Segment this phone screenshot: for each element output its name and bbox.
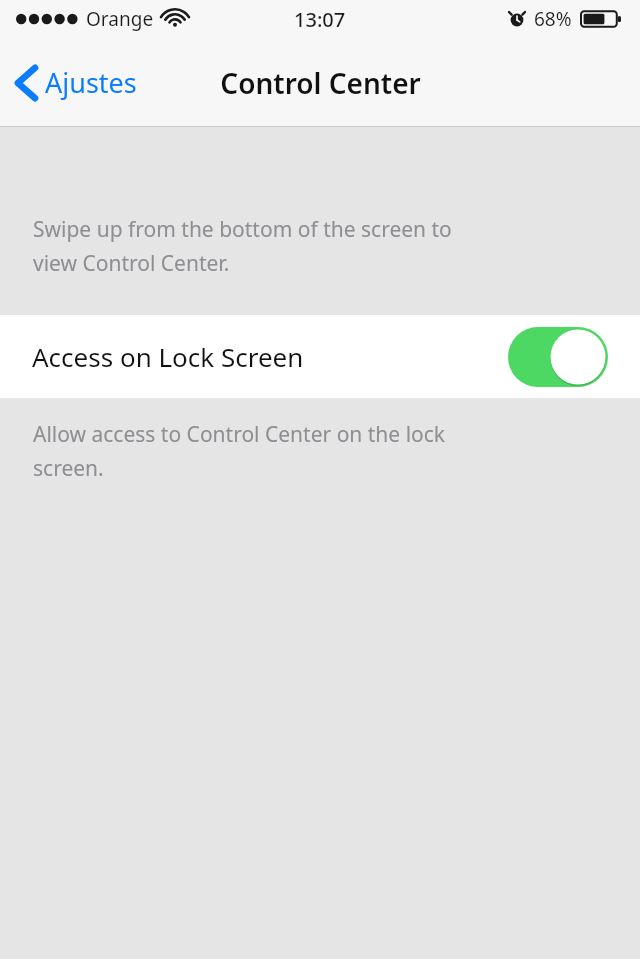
staticText: Swipe up from the bottom of the screen t… [33, 215, 452, 277]
button[interactable]: Access on Lock Screen toggle, on [508, 327, 608, 387]
staticText: 68% [534, 6, 572, 32]
button[interactable]: Ajustes [0, 38, 151, 127]
staticText: Access on Lock Screen [32, 339, 304, 374]
staticText: Orange [86, 6, 154, 32]
staticText: 13:07 [294, 6, 346, 33]
staticText: Control Center [220, 64, 421, 102]
button[interactable]: Access on Lock Screen [0, 315, 640, 398]
staticText: Ajustes [45, 64, 137, 101]
staticText: Allow access to Control Center on the lo… [33, 420, 446, 482]
